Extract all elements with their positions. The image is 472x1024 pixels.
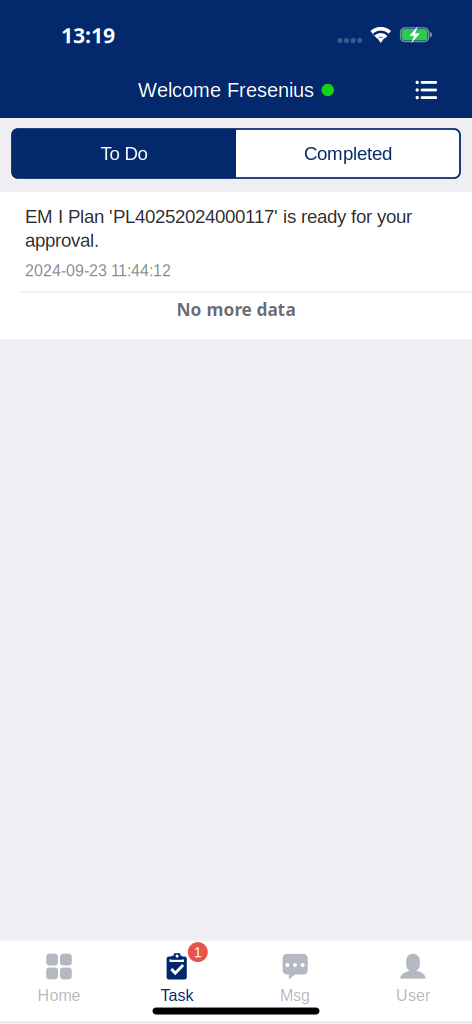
- staticText: Welcome Fresenius: [138, 79, 314, 101]
- button[interactable]: Menu: [405, 72, 447, 108]
- button[interactable]: Msg: [236, 940, 354, 1000]
- button[interactable]: Home: [0, 940, 118, 1000]
- staticText: Completed: [304, 143, 392, 164]
- staticText: No more data: [176, 298, 295, 321]
- staticText: 13:19: [61, 20, 115, 50]
- staticText: 1: [194, 944, 202, 960]
- button[interactable]: 1: [118, 940, 236, 1000]
- staticText: Task: [160, 986, 193, 1004]
- button[interactable]: User: [354, 940, 472, 1000]
- button[interactable]: To Do: [12, 129, 236, 178]
- staticText: EM I Plan 'PL40252024000117' is ready fo…: [25, 206, 412, 251]
- staticText: To Do: [100, 143, 147, 164]
- staticText: 2024-09-23 11:44:12: [25, 262, 171, 280]
- staticText: User: [396, 986, 430, 1004]
- button[interactable]: EM I Plan 'PL40252024000117' is ready fo…: [0, 192, 472, 292]
- button[interactable]: Completed: [236, 129, 460, 178]
- staticText: Home: [37, 986, 80, 1004]
- staticText: Msg: [280, 986, 310, 1004]
